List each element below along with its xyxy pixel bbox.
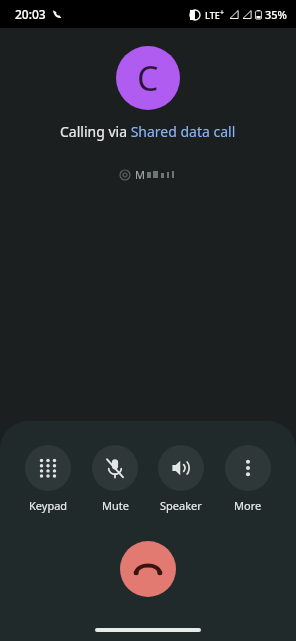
button[interactable]: Speaker [152, 443, 210, 515]
staticText: Speaker [160, 498, 202, 513]
button[interactable]: Keypad [19, 443, 77, 515]
staticText: 35% [265, 7, 287, 22]
staticText: Keypad [29, 498, 68, 513]
staticText: 20:03 [15, 6, 46, 22]
staticText: More [234, 498, 262, 513]
staticText: M [135, 167, 145, 182]
staticText: Mute [102, 498, 129, 513]
staticText: C [137, 55, 159, 101]
staticText: + [220, 8, 225, 18]
button[interactable]: Mute [86, 443, 144, 515]
staticText: LTE [205, 9, 220, 21]
button[interactable]: End call [120, 541, 176, 597]
button[interactable]: More [219, 443, 277, 515]
staticText: Calling via Shared data call [60, 122, 236, 141]
